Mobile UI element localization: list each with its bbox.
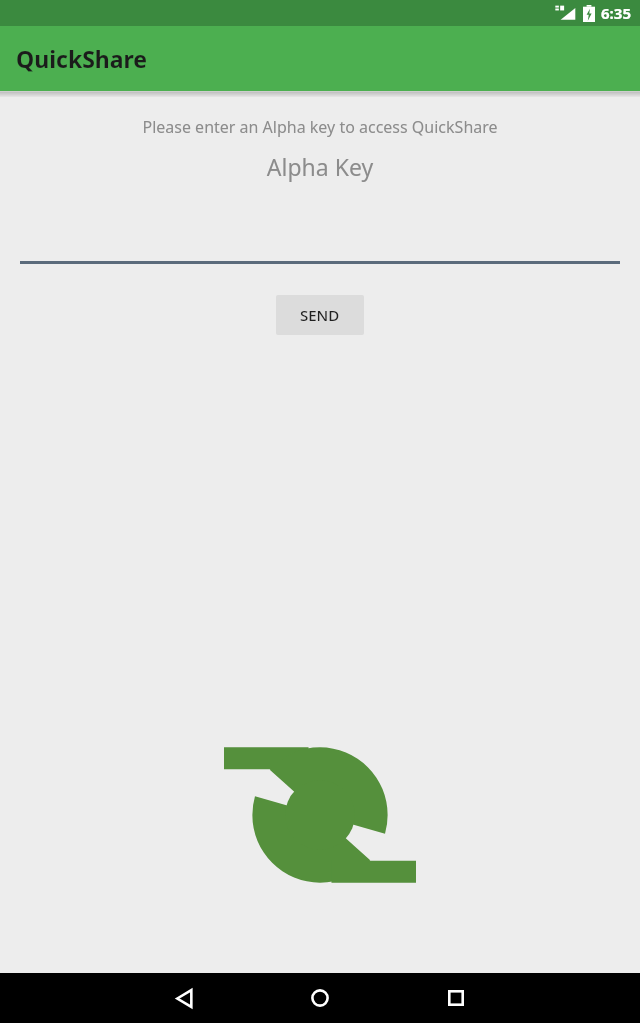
button[interactable]: SEND: [276, 295, 364, 335]
staticText: QuickShare: [16, 43, 148, 74]
staticText: SEND: [300, 305, 340, 325]
button[interactable]: Home: [290, 973, 350, 1023]
other: QuickShare logo: [224, 723, 416, 907]
staticText: 6:35: [601, 3, 631, 23]
staticText: Please enter an Alpha key to access Quic…: [0, 116, 640, 138]
button[interactable]: Back: [154, 973, 214, 1023]
button[interactable]: Recent apps: [426, 973, 486, 1023]
staticText: Alpha Key: [0, 151, 640, 182]
